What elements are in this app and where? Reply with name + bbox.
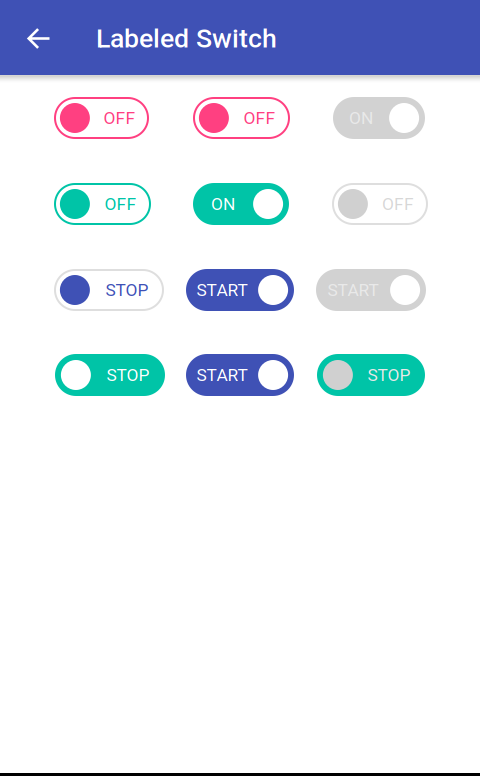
button[interactable]: OFF [332,183,428,225]
staticText: START [197,365,248,385]
button[interactable]: OFF [54,97,149,139]
staticText: ON [349,108,373,128]
button[interactable]: ON [333,97,425,139]
button[interactable]: START [186,269,294,311]
button[interactable]: OFF [193,97,290,139]
staticText: START [328,280,379,300]
staticText: OFF [103,108,135,128]
staticText: STOP [106,365,149,385]
button[interactable]: STOP [317,354,425,396]
staticText: OFF [382,194,414,214]
staticText: ON [211,194,235,214]
staticText: STOP [105,280,148,300]
staticText: Labeled Switch [96,23,277,54]
button[interactable]: ON [193,183,289,225]
button[interactable]: Back [15,10,63,66]
button[interactable]: STOP [54,269,164,311]
staticText: OFF [104,194,136,214]
staticText: OFF [243,108,275,128]
staticText: STOP [367,365,410,385]
button[interactable]: START [186,354,294,396]
button[interactable]: START [316,269,426,311]
staticText: START [197,280,248,300]
button[interactable]: OFF [54,183,151,225]
button[interactable]: STOP [55,354,165,396]
